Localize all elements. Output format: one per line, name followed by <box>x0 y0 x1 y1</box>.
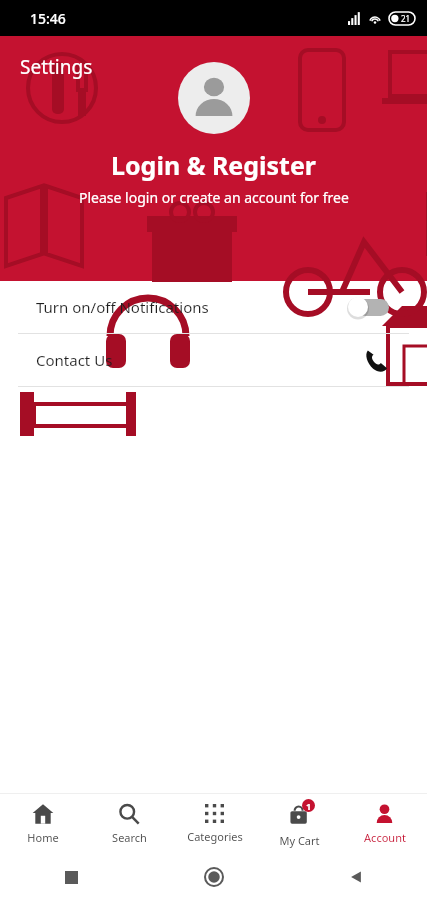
staticText: 21 <box>401 13 411 24</box>
button[interactable]: Home <box>0 794 86 854</box>
button[interactable]: Turn on/off Notifications <box>0 281 427 333</box>
staticText: Settings <box>20 54 93 80</box>
button[interactable]: Back <box>285 854 427 900</box>
button[interactable]: 1 <box>257 794 342 854</box>
staticText: Search <box>112 830 147 845</box>
staticText: Turn on/off Notifications <box>36 297 209 317</box>
staticText: Account <box>364 830 406 845</box>
button[interactable]: Search <box>86 794 172 854</box>
staticText: Categories <box>187 829 243 844</box>
staticText: Please login or create an account for fr… <box>79 188 349 207</box>
button[interactable]: Categories <box>172 794 257 854</box>
staticText: My Cart <box>279 833 320 848</box>
staticText: 15:46 <box>30 9 66 28</box>
button[interactable]: Contact Us <box>0 334 427 386</box>
button[interactable]: Home <box>143 854 285 900</box>
button[interactable]: Profile avatar <box>178 62 250 134</box>
button[interactable]: Notifications toggle <box>347 296 391 318</box>
staticText: Login & Register <box>111 148 316 182</box>
button[interactable]: Account <box>342 794 427 854</box>
staticText: Contact Us <box>36 350 113 370</box>
staticText: Home <box>27 830 59 845</box>
button[interactable]: Contact Us <box>361 345 391 375</box>
button[interactable]: Recents <box>0 854 143 900</box>
staticText: 1 <box>306 800 312 812</box>
